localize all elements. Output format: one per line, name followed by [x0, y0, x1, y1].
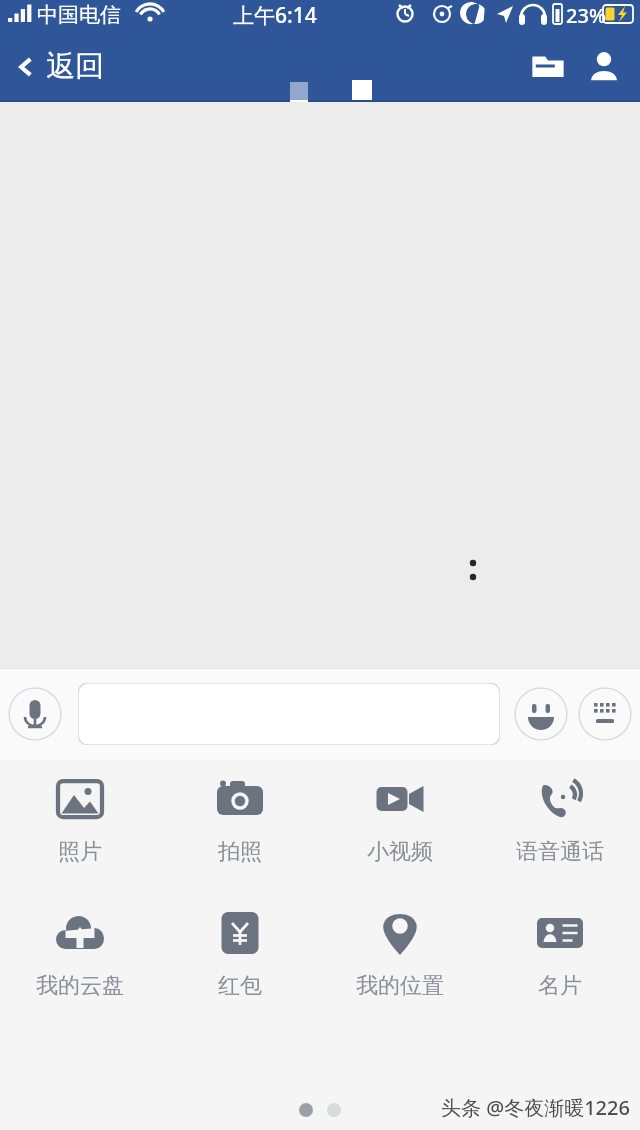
staticText: 我的位置: [356, 972, 444, 1000]
button[interactable]: [78, 683, 500, 745]
button[interactable]: Files: [520, 38, 576, 94]
button[interactable]: 小视频: [320, 774, 480, 866]
staticText: 上午6:14: [233, 1, 317, 30]
button[interactable]: Voice input: [8, 687, 62, 741]
staticText: 照片: [58, 838, 102, 866]
button[interactable]: 名片: [480, 908, 640, 1000]
button[interactable]: 返回: [0, 40, 120, 93]
staticText: 语音通话: [516, 838, 604, 866]
staticText: 红包: [218, 972, 262, 1000]
staticText: 返回: [46, 48, 104, 85]
button[interactable]: 照片: [0, 774, 160, 866]
button[interactable]: Keyboard: [578, 687, 632, 741]
button[interactable]: Contact: [576, 38, 632, 94]
button[interactable]: Emoji: [514, 687, 568, 741]
staticText: 名片: [538, 972, 582, 1000]
staticText: 中国电信: [37, 2, 121, 28]
button[interactable]: 红包: [160, 908, 320, 1000]
staticText: 头条 @冬夜渐暖1226: [441, 1094, 630, 1121]
staticText: 23%: [566, 2, 606, 29]
button[interactable]: 我的位置: [320, 908, 480, 1000]
button[interactable]: 我的云盘: [0, 908, 160, 1000]
button[interactable]: 拍照: [160, 774, 320, 866]
staticText: 我的云盘: [36, 972, 124, 1000]
staticText: 拍照: [218, 838, 262, 866]
button[interactable]: 语音通话: [480, 774, 640, 866]
staticText: 小视频: [367, 838, 433, 866]
